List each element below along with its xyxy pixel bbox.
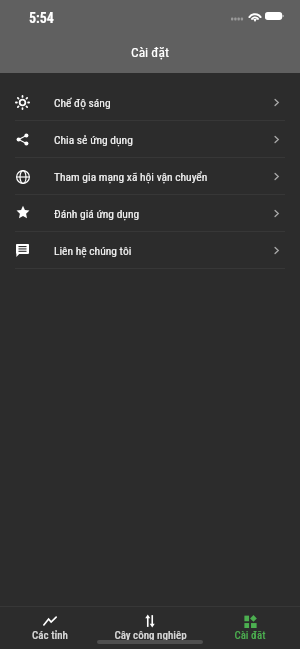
staticText: Liên hệ chúng tôi — [54, 244, 132, 257]
button[interactable]: Đánh giá ứng dụng — [0, 195, 300, 232]
button[interactable]: Cây công nghiệp — [100, 607, 200, 640]
button[interactable]: Liên hệ chúng tôi — [0, 232, 300, 269]
button[interactable]: Chia sẻ ứng dụng — [0, 121, 300, 158]
button[interactable]: Cài đặt — [200, 607, 300, 640]
staticText: Các tỉnh — [32, 629, 68, 640]
button[interactable]: Các tỉnh — [0, 607, 100, 640]
staticText: Cài đặt — [234, 629, 266, 640]
button[interactable]: Chế độ sáng — [0, 84, 300, 121]
staticText: 5:54 — [29, 10, 54, 26]
staticText: Chế độ sáng — [54, 96, 111, 109]
button[interactable]: Tham gia mạng xã hội vận chuyển — [0, 158, 300, 195]
staticText: Tham gia mạng xã hội vận chuyển — [54, 170, 208, 183]
staticText: Cài đặt — [131, 44, 169, 60]
staticText: Chia sẻ ứng dụng — [54, 133, 133, 146]
staticText: Đánh giá ứng dụng — [54, 207, 140, 220]
staticText: Cây công nghiệp — [114, 629, 187, 640]
